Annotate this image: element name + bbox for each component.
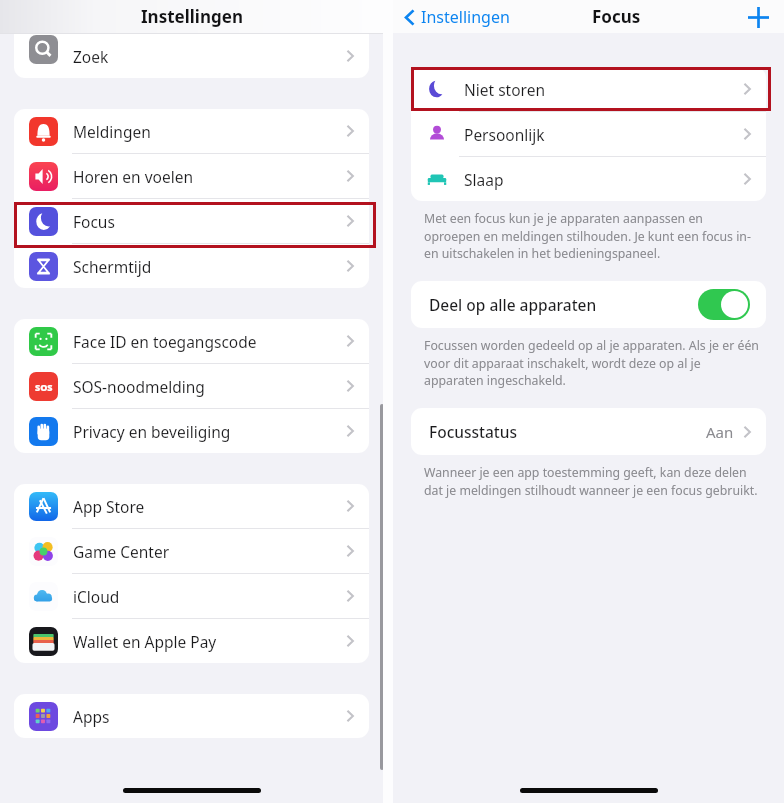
button[interactable]: Deel op alle apparaten [698,289,750,320]
button[interactable]: Focusstatus [411,408,766,455]
staticText: Focusstatus [429,421,518,442]
staticText: App Store [73,496,145,517]
button[interactable]: Niet storen [411,67,766,111]
staticText: Horen en voelen [73,166,193,187]
button[interactable]: Apps [14,694,369,738]
button[interactable]: App Store [14,484,369,528]
staticText: Game Center [73,541,170,562]
button[interactable]: Wallet en Apple Pay [14,619,369,663]
staticText: Wanneer je een app toestemming geeft, ka… [424,464,762,498]
button[interactable]: Persoonlijk [411,112,766,156]
button[interactable]: Game Center [14,529,369,573]
button[interactable]: Horen en voelen [14,154,369,198]
button[interactable]: Instellingen [401,2,514,32]
button[interactable]: Face ID en toegangscode [14,319,369,363]
button[interactable]: Meldingen [14,109,369,153]
staticText: Met een focus kun je je apparaten aanpas… [424,210,762,261]
button[interactable]: Focus [14,199,369,243]
button[interactable]: Zoek [14,34,369,78]
staticText: Instellingen [421,6,510,28]
staticText: Wallet en Apple Pay [73,631,217,652]
staticText: Privacy en beveiliging [73,421,231,442]
staticText: Instellingen [141,5,243,28]
staticText: Meldingen [73,121,151,142]
button[interactable]: Voeg focus toe [742,1,774,33]
staticText: Aan [706,422,734,442]
staticText: iCloud [73,586,120,607]
staticText: Focus [592,5,641,28]
staticText: Niet storen [464,79,545,100]
staticText: Schermtijd [73,256,152,277]
button[interactable]: Schermtijd [14,244,369,288]
staticText: Zoek [73,46,109,67]
button[interactable]: Slaap [411,157,766,201]
staticText: Face ID en toegangscode [73,331,257,352]
staticText: SOS [35,381,53,393]
staticText: Slaap [464,169,504,190]
staticText: Persoonlijk [464,124,545,145]
button[interactable]: iCloud [14,574,369,618]
button[interactable]: Deel op alle apparaten [411,281,766,328]
staticText: SOS-noodmelding [73,376,205,397]
staticText: Focussen worden gedeeld op al je apparat… [424,337,762,388]
button[interactable]: Privacy en beveiliging [14,409,369,453]
staticText: Deel op alle apparaten [429,294,597,315]
staticText: Focus [73,211,115,232]
button[interactable]: SOS [14,364,369,408]
staticText: Apps [73,706,110,727]
